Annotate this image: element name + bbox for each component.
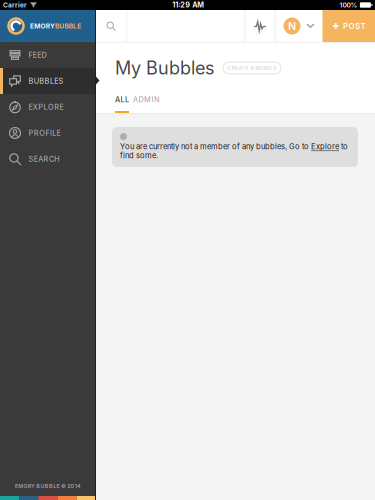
button[interactable]: SEARCH xyxy=(0,146,96,172)
staticText: EXPLORE xyxy=(28,103,64,111)
button[interactable]: Search xyxy=(95,10,126,42)
staticText: Carrier xyxy=(3,1,27,9)
staticText: PROFILE xyxy=(28,129,61,137)
staticText: FEED xyxy=(28,51,46,59)
button[interactable]: POST xyxy=(322,10,375,42)
button[interactable]: PROFILE xyxy=(0,120,96,146)
button[interactable]: ALL xyxy=(115,94,129,113)
button[interactable]: Activity xyxy=(245,10,274,42)
staticText: SEARCH xyxy=(28,155,59,163)
staticText: BUBBLE xyxy=(55,22,81,30)
staticText: EMORY xyxy=(30,22,55,30)
staticText: ALL xyxy=(115,95,129,104)
button[interactable]: FEED xyxy=(0,42,96,68)
staticText: 100% xyxy=(339,1,357,9)
button[interactable]: Account xyxy=(275,10,322,42)
staticText: ADMIN xyxy=(133,95,160,104)
button[interactable]: ADMIN xyxy=(136,94,157,113)
button[interactable]: EXPLORE xyxy=(0,94,96,120)
staticText: My Bubbles xyxy=(115,57,215,79)
staticText: POST xyxy=(343,21,365,31)
staticText: 11:29 AM xyxy=(172,1,204,9)
button[interactable]: CREATE A BUBBLE xyxy=(223,62,281,74)
staticText: You are currently not a member of any bu… xyxy=(120,142,348,160)
staticText: BUBBLES xyxy=(28,77,64,85)
staticText: EMORY BUBBLE © 2014 xyxy=(15,483,81,489)
staticText: N xyxy=(288,19,296,32)
button[interactable]: BUBBLES xyxy=(0,68,96,94)
staticText: CREATE A BUBBLE xyxy=(227,65,277,71)
